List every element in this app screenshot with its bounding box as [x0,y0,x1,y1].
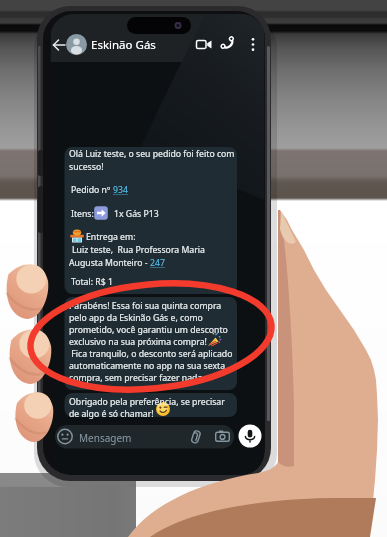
staticText: Eskinão Gás [91,37,156,53]
button[interactable]: Eskinão Gás [50,31,170,59]
staticText: de algo é só chamar! [69,408,156,420]
staticText: 1x Gás P13 [114,208,159,220]
staticText: Luiz teste, Rua Professora Maria [72,244,205,256]
staticText: 934 [113,184,128,196]
staticText: Mensagem [79,431,132,445]
staticText: Entrega em: [86,231,136,243]
staticText: Olá Luiz teste, o seu pedido foi feito c… [69,148,235,160]
staticText: automaticamente no app na sua sexta [69,360,226,372]
staticText: Pedido nº [71,184,113,196]
staticText: pelo app da Eskinão Gás e, como [69,312,203,324]
staticText: compra, sem precisar fazer nada. [69,372,205,384]
staticText: exclusivo na sua próxima compra! [69,336,207,348]
staticText: 247 [150,257,165,269]
staticText: Total: R$ 1 [71,276,113,288]
staticText: Fica tranquilo, o desconto será aplicado [69,348,233,360]
staticText: Itens: [71,208,94,220]
staticText: sucesso! [69,161,104,173]
staticText: Parabéns! Essa foi sua quinta compra [69,300,222,312]
staticText: Obrigado pela preferência, se precisar [69,396,225,408]
staticText: prometido, você garantiu um desconto [69,324,228,336]
staticText: Augusta Monteiro - [69,257,150,269]
